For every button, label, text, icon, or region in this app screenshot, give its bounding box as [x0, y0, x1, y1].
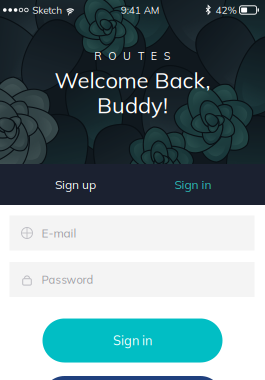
button[interactable]: Sign in — [127, 164, 259, 205]
staticText: Buddy! — [97, 91, 168, 119]
staticText: Sign in — [113, 333, 152, 348]
button[interactable]: Sign in — [42, 318, 222, 362]
staticText: O — [108, 49, 116, 63]
button[interactable]: Password — [9, 262, 254, 297]
staticText: U — [123, 49, 131, 63]
button[interactable]: Sign up — [9, 164, 141, 205]
staticText: E — [151, 49, 157, 63]
staticText: R — [94, 49, 101, 63]
button[interactable]: E-mail — [9, 215, 254, 250]
button[interactable] — [42, 376, 222, 380]
staticText: Sign in — [174, 177, 211, 192]
staticText: E-mail — [41, 226, 76, 240]
staticText: 9:41 AM — [121, 4, 160, 16]
staticText: Sketch — [32, 4, 62, 16]
staticText: Sign up — [55, 177, 96, 192]
staticText: Welcome Back, — [54, 66, 210, 94]
staticText: S — [164, 49, 171, 63]
staticText: Password — [41, 272, 93, 287]
staticText: T — [138, 49, 144, 63]
staticText: 42% — [215, 4, 236, 16]
